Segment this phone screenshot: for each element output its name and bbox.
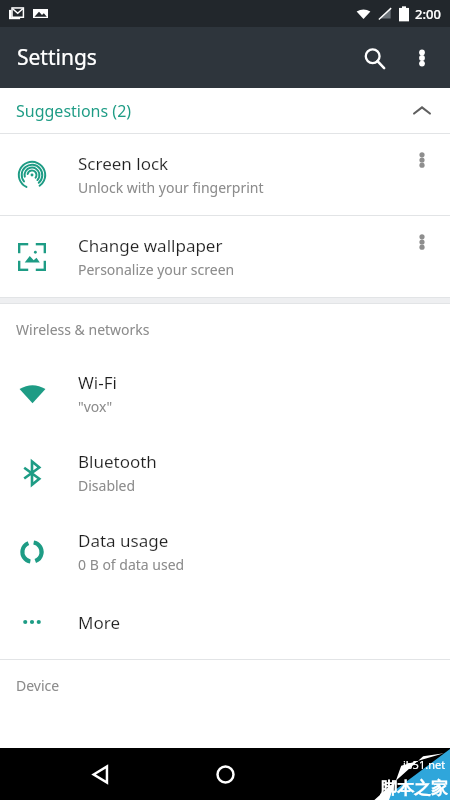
staticText: Data usage — [78, 529, 169, 552]
staticText: Settings — [17, 43, 97, 72]
staticText: 2:00 — [415, 5, 441, 23]
staticText: Change wallpaper — [78, 234, 223, 257]
button[interactable]: Suggestions (2) — [0, 88, 450, 133]
staticText: More — [78, 611, 120, 634]
button[interactable]: Home — [202, 751, 248, 797]
staticText: Screen lock — [78, 152, 169, 175]
button[interactable]: Options — [402, 222, 442, 262]
button[interactable]: More options — [398, 34, 446, 82]
staticText: Bluetooth — [78, 450, 157, 473]
staticText: 脚本之家 — [380, 778, 448, 799]
staticText: 0 B of data used — [78, 555, 185, 574]
staticText: Device — [16, 676, 60, 695]
button[interactable]: Screen lock — [0, 134, 450, 215]
staticText: Unlock with your fingerprint — [78, 178, 264, 197]
staticText: "vox" — [78, 397, 113, 416]
staticText: jb51.net — [403, 757, 446, 772]
staticText: Disabled — [78, 476, 136, 495]
staticText: Suggestions (2) — [16, 100, 132, 122]
staticText: Wireless & networks — [16, 320, 150, 339]
button[interactable]: Data usage — [0, 512, 450, 591]
button[interactable]: Change wallpaper — [0, 216, 450, 297]
button[interactable]: Bluetooth — [0, 433, 450, 512]
button[interactable]: Search — [350, 34, 398, 82]
button[interactable]: Wi-Fi — [0, 354, 450, 433]
staticText: Wi-Fi — [78, 371, 117, 394]
button[interactable]: Options — [402, 140, 442, 180]
button[interactable]: More — [0, 591, 450, 653]
staticText: Personalize your screen — [78, 260, 235, 279]
button[interactable]: Back — [77, 751, 123, 797]
